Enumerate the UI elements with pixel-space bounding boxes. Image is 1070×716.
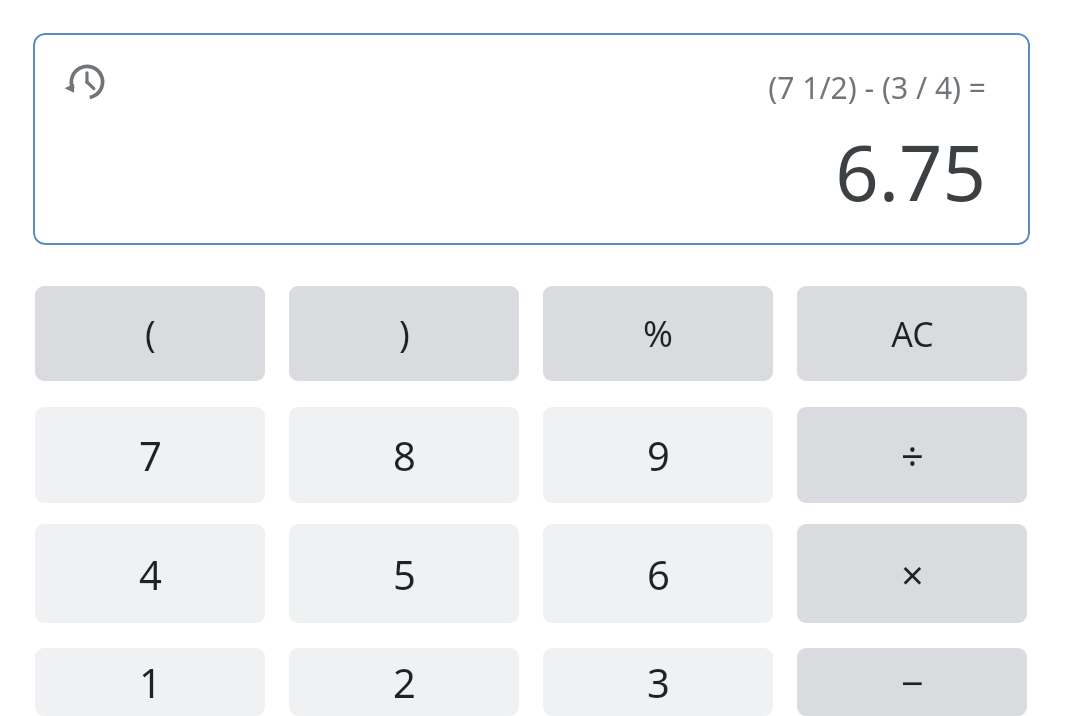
staticText: ÷ <box>901 428 924 482</box>
staticText: 5 <box>393 547 416 601</box>
button[interactable]: ÷ <box>797 407 1027 503</box>
staticText: × <box>901 547 924 601</box>
button[interactable]: 3 <box>543 648 773 716</box>
staticText: ) <box>399 309 410 358</box>
button[interactable]: AC <box>797 286 1027 381</box>
staticText: 3 <box>647 655 670 709</box>
staticText: 9 <box>647 428 670 482</box>
button[interactable]: × <box>797 524 1027 623</box>
staticText: AC <box>891 311 934 357</box>
staticText: ( <box>145 309 156 358</box>
staticText: 1 <box>139 655 162 709</box>
staticText: 4 <box>139 547 162 601</box>
button[interactable]: % <box>543 286 773 381</box>
button[interactable]: 9 <box>543 407 773 503</box>
button[interactable]: 1 <box>35 648 265 716</box>
staticText: 7 <box>139 428 162 482</box>
staticText: 2 <box>393 655 416 709</box>
staticText: 6.75 <box>835 120 986 224</box>
button[interactable]: 6 <box>543 524 773 623</box>
button[interactable]: 2 <box>289 648 519 716</box>
button[interactable]: ( <box>35 286 265 381</box>
staticText: 8 <box>393 428 416 482</box>
staticText: (7 1/2) - (3 / 4) = <box>768 67 986 108</box>
staticText: % <box>643 309 673 358</box>
button[interactable]: 7 <box>35 407 265 503</box>
staticText: 6 <box>647 547 670 601</box>
staticText: − <box>901 655 924 709</box>
button[interactable]: History <box>61 58 109 106</box>
button[interactable]: ) <box>289 286 519 381</box>
button[interactable]: − <box>797 648 1027 716</box>
button[interactable]: 5 <box>289 524 519 623</box>
button[interactable]: 8 <box>289 407 519 503</box>
button[interactable]: 4 <box>35 524 265 623</box>
